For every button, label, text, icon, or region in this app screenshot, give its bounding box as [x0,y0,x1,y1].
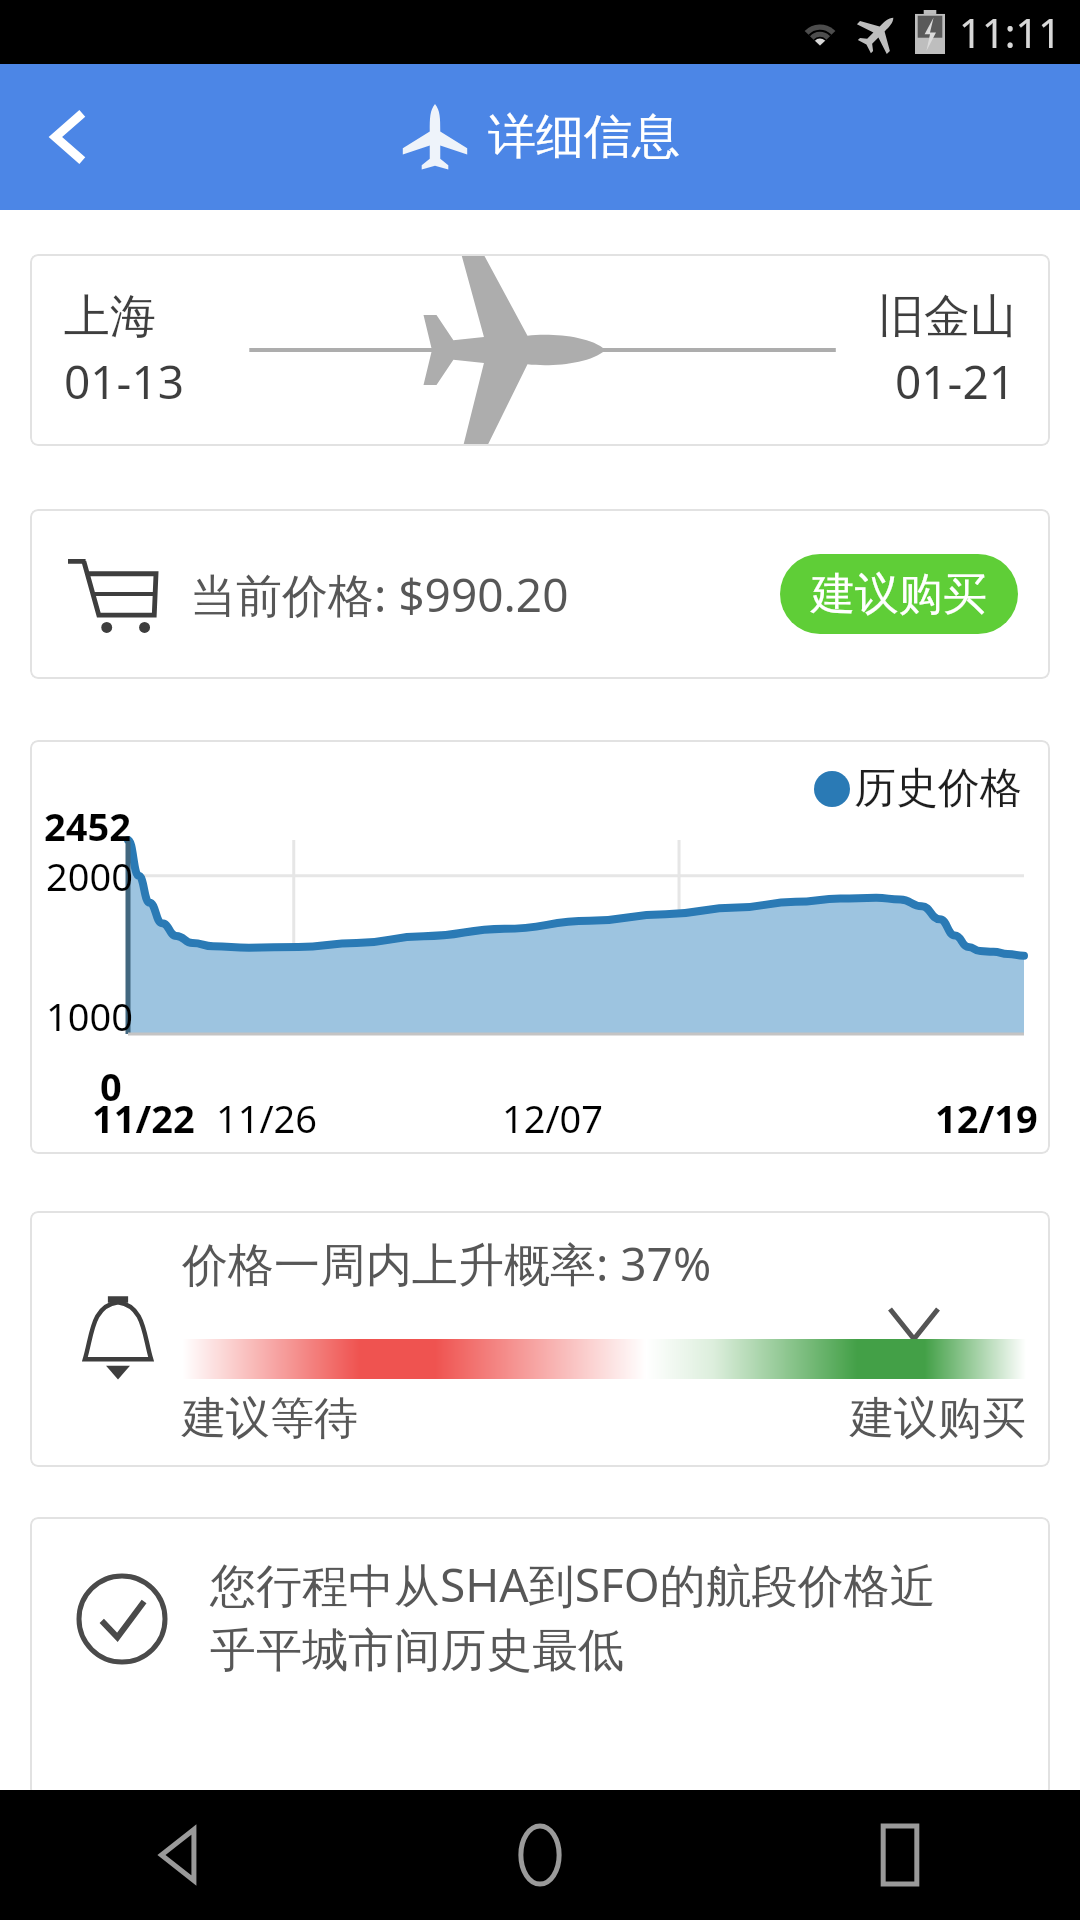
staticText: 旧金山 [878,288,1016,346]
staticText: 建议等待 [182,1391,358,1446]
button[interactable]: 您行程中从SHA到SFO的航段价格近 [30,1517,1050,1797]
button[interactable]: Home [360,1790,720,1920]
staticText: 建议购买 [850,1391,1026,1446]
staticText: 12/19 [935,1092,1038,1144]
staticText: 您行程中从SHA到SFO的航段价格近 [210,1553,936,1616]
staticText: 详细信息 [488,107,680,167]
staticText: 11/22 [92,1092,195,1144]
button[interactable]: 价格一周内上升概率: 37% [30,1211,1050,1467]
staticText: 2452 [44,800,131,852]
button[interactable]: Recents [720,1790,1080,1920]
staticText: 11/26 [216,1092,318,1144]
staticText: 12/07 [502,1092,604,1144]
staticText: 当前价格: $990.20 [190,563,569,626]
staticText: 01-13 [64,350,185,413]
staticText: 01-21 [895,350,1016,413]
staticText: 价格一周内上升概率: 37% [182,1232,712,1295]
staticText: 历史价格 [854,762,1022,815]
button[interactable]: 建议购买 [780,554,1018,634]
staticText: 2000 [46,850,133,902]
staticText: 1000 [46,990,133,1042]
staticText: 建议购买 [811,567,987,622]
button[interactable]: Back [0,1790,360,1920]
staticText: 0 [100,1060,122,1112]
staticText: 乎平城市间历史最低 [210,1622,624,1680]
button[interactable]: 历史价格 [30,740,1050,1154]
button[interactable]: 当前价格: $990.20 [30,509,1050,679]
staticText: 11:11 [959,5,1062,59]
staticText: 上海 [64,288,156,346]
button[interactable]: Back [20,87,120,187]
button[interactable]: 上海 [30,254,1050,446]
